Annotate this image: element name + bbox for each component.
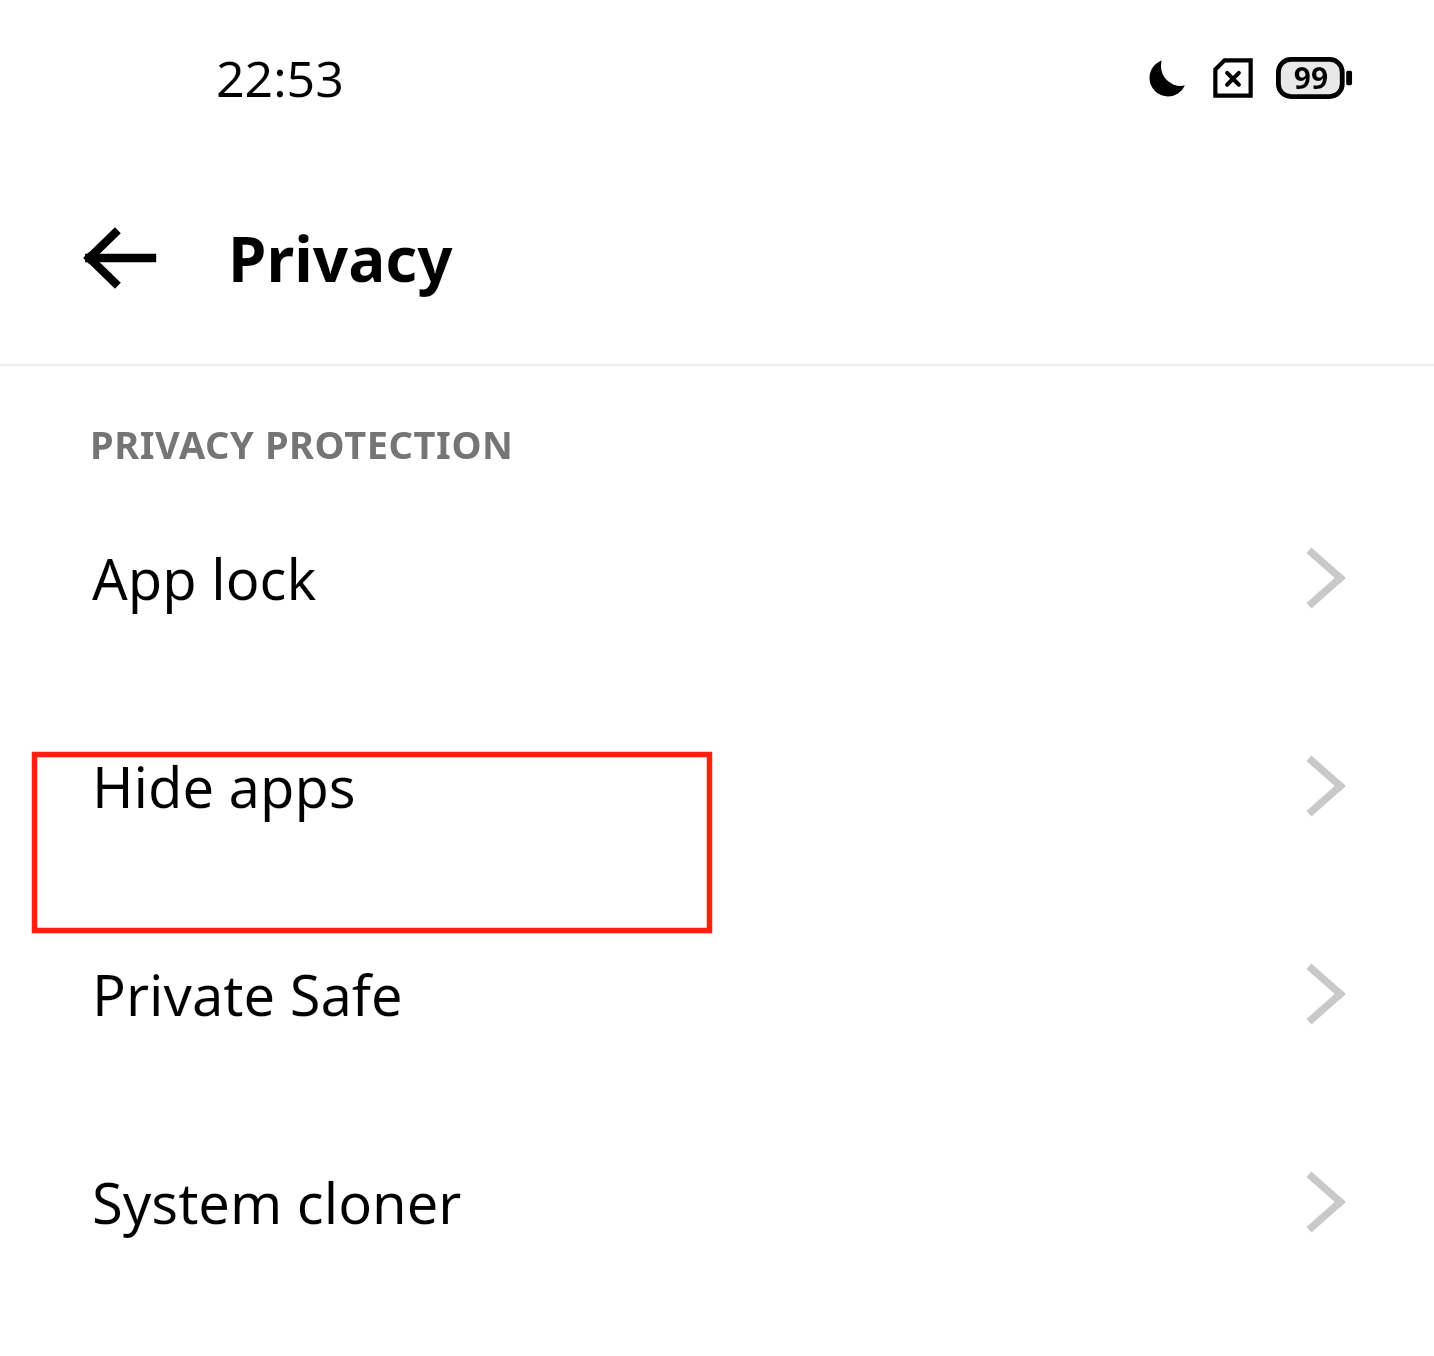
button[interactable]: Private Safe <box>0 890 1434 1098</box>
staticText: PRIVACY PROTECTION <box>90 418 514 470</box>
staticText: App lock <box>92 540 1308 616</box>
staticText: 99 <box>1287 57 1335 98</box>
button[interactable]: Back <box>68 206 172 310</box>
staticText: Hide apps <box>92 748 1308 824</box>
button[interactable]: Hide apps <box>0 682 1434 890</box>
button[interactable]: App lock <box>0 474 1434 682</box>
button[interactable]: System cloner <box>0 1098 1434 1306</box>
staticText: Privacy <box>228 216 453 300</box>
staticText: System cloner <box>92 1164 1308 1240</box>
staticText: Private Safe <box>92 956 1308 1032</box>
staticText: 22:53 <box>216 44 344 112</box>
